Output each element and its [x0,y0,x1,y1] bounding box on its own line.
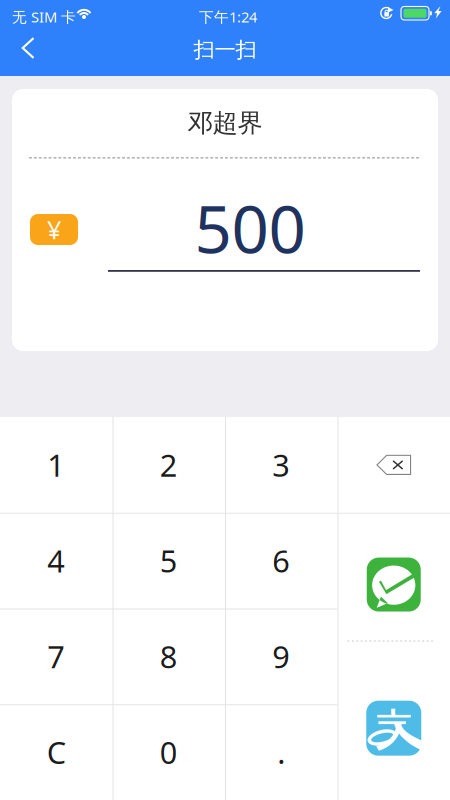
staticText: 9 [272,636,290,677]
staticText: 1 [47,444,65,485]
staticText: C [47,732,66,772]
button[interactable]: 返回 [6,26,50,70]
staticText: 5 [160,540,178,581]
button[interactable]: 3 [225,417,337,513]
staticText: 0 [160,732,178,772]
button[interactable]: 7 [0,608,112,704]
staticText: 无 SIM 卡 [12,7,76,26]
staticText: 下午1:24 [199,7,257,26]
staticText: 扫一扫 [193,37,256,63]
button[interactable]: 0 [112,704,225,800]
staticText: 6 [272,540,290,581]
staticText: 3 [272,444,290,485]
staticText: 8 [160,636,178,677]
staticText: ¥ [47,213,61,246]
button[interactable]: 9 [225,608,337,704]
button[interactable]: . [225,704,337,800]
staticText: . [277,732,285,772]
staticText: 500 [194,185,305,271]
staticText: 7 [47,636,65,677]
staticText: 4 [47,540,65,581]
staticText: 邓超界 [187,107,262,138]
button[interactable]: 5 [112,513,225,609]
button[interactable]: 2 [112,417,225,513]
button[interactable]: 删除 [337,417,450,513]
button[interactable]: 支付宝 [337,656,450,800]
button[interactable]: 6 [225,513,337,609]
button[interactable]: 4 [0,513,112,609]
button[interactable]: 微信支付 [337,513,450,656]
button[interactable]: 1 [0,417,112,513]
button[interactable]: 8 [112,608,225,704]
staticText: 2 [160,444,178,485]
button[interactable]: C [0,704,112,800]
